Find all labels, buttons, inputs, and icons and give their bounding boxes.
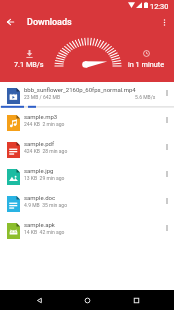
button[interactable]: More options — [160, 109, 174, 131]
button[interactable]: bbb_sunflower_2160p_60fps_normal.mp4 — [0, 82, 174, 109]
button[interactable]: More options — [154, 12, 174, 32]
button[interactable]: sample.apk — [0, 217, 174, 244]
button[interactable]: Back — [0, 12, 20, 32]
staticText: 12:30 — [150, 2, 169, 11]
button[interactable]: Home — [77, 290, 97, 310]
staticText: 424 KB 28 min ago — [24, 148, 68, 154]
button[interactable]: sample.doc — [0, 190, 174, 217]
button[interactable]: Back — [29, 290, 49, 310]
staticText: 244 KB 2 min ago — [24, 121, 65, 127]
button[interactable]: More options — [160, 82, 174, 104]
staticText: sample.pdf — [24, 140, 55, 147]
staticText: sample.mp3 — [24, 113, 58, 120]
staticText: 13 KB 29 min ago — [24, 175, 65, 181]
button[interactable]: sample.mp3 — [0, 109, 174, 136]
staticText: sample.doc — [24, 194, 56, 201]
button[interactable]: Recents — [126, 290, 146, 310]
staticText: bbb_sunflower_2160p_60fps_normal.mp4 — [24, 86, 136, 93]
button[interactable]: sample.pdf — [0, 136, 174, 163]
button[interactable]: More options — [160, 163, 174, 185]
staticText: 23 MB / 642 MB — [24, 94, 61, 100]
staticText: sample.jpg — [24, 167, 54, 174]
staticText: 14 KB 42 min ago — [24, 229, 65, 235]
button[interactable]: sample.jpg — [0, 163, 174, 190]
staticText: 5.6 MB/s — [135, 94, 156, 100]
staticText: in 1 minute — [128, 60, 165, 69]
staticText: 7.1 MB/s — [14, 60, 44, 69]
staticText: 4.9 MB 35 min ago — [24, 202, 67, 208]
button[interactable]: More options — [160, 217, 174, 239]
staticText: Downloads — [27, 17, 72, 28]
button[interactable]: More options — [160, 190, 174, 212]
button[interactable]: More options — [160, 136, 174, 158]
staticText: sample.apk — [24, 221, 55, 228]
